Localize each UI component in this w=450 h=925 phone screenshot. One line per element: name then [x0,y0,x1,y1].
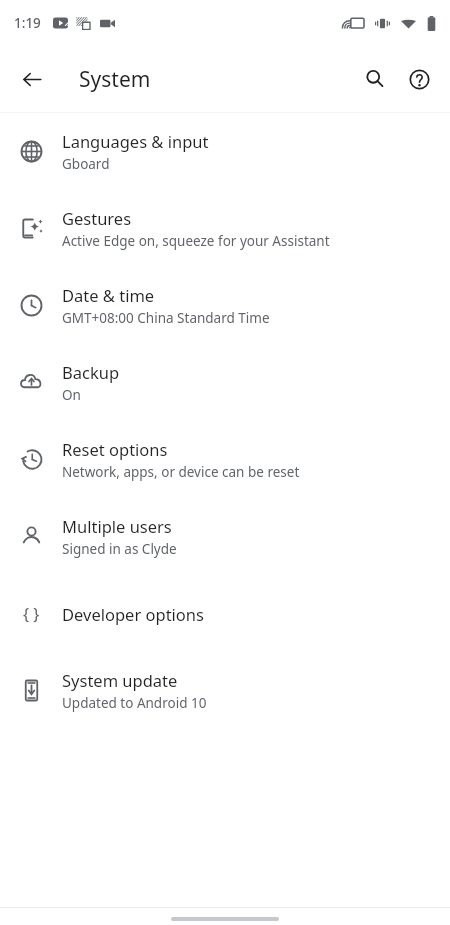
staticText: 1:19 [14,14,41,32]
staticText: Developer options [62,603,204,625]
staticText: GMT+08:00 China Standard Time [62,309,270,327]
staticText: Reset options [62,438,168,460]
staticText: On [62,386,81,404]
button[interactable]: Help [397,57,441,101]
button[interactable]: Languages & input [0,113,450,190]
staticText: Signed in as Clyde [62,540,177,558]
staticText: Multiple users [62,515,172,537]
staticText: System [79,65,151,94]
staticText: Languages & input [62,130,209,152]
staticText: Date & time [62,284,155,306]
button[interactable]: Multiple users [0,498,450,575]
staticText: Updated to Android 10 [62,694,207,712]
staticText: Backup [62,361,120,383]
staticText: System update [62,669,178,691]
button[interactable]: System update [0,652,450,729]
button[interactable]: Date & time [0,267,450,344]
button[interactable]: { } [0,575,450,652]
staticText: { } [23,603,40,625]
button[interactable]: Back [14,61,50,97]
staticText: Network, apps, or device can be reset [62,463,300,481]
staticText: Gboard [62,155,110,173]
staticText: Gestures [62,207,132,229]
button[interactable]: Reset options [0,421,450,498]
button[interactable]: Search [353,57,397,101]
staticText: Active Edge on, squeeze for your Assista… [62,232,330,250]
button[interactable]: Backup [0,344,450,421]
button[interactable]: Gestures [0,190,450,267]
